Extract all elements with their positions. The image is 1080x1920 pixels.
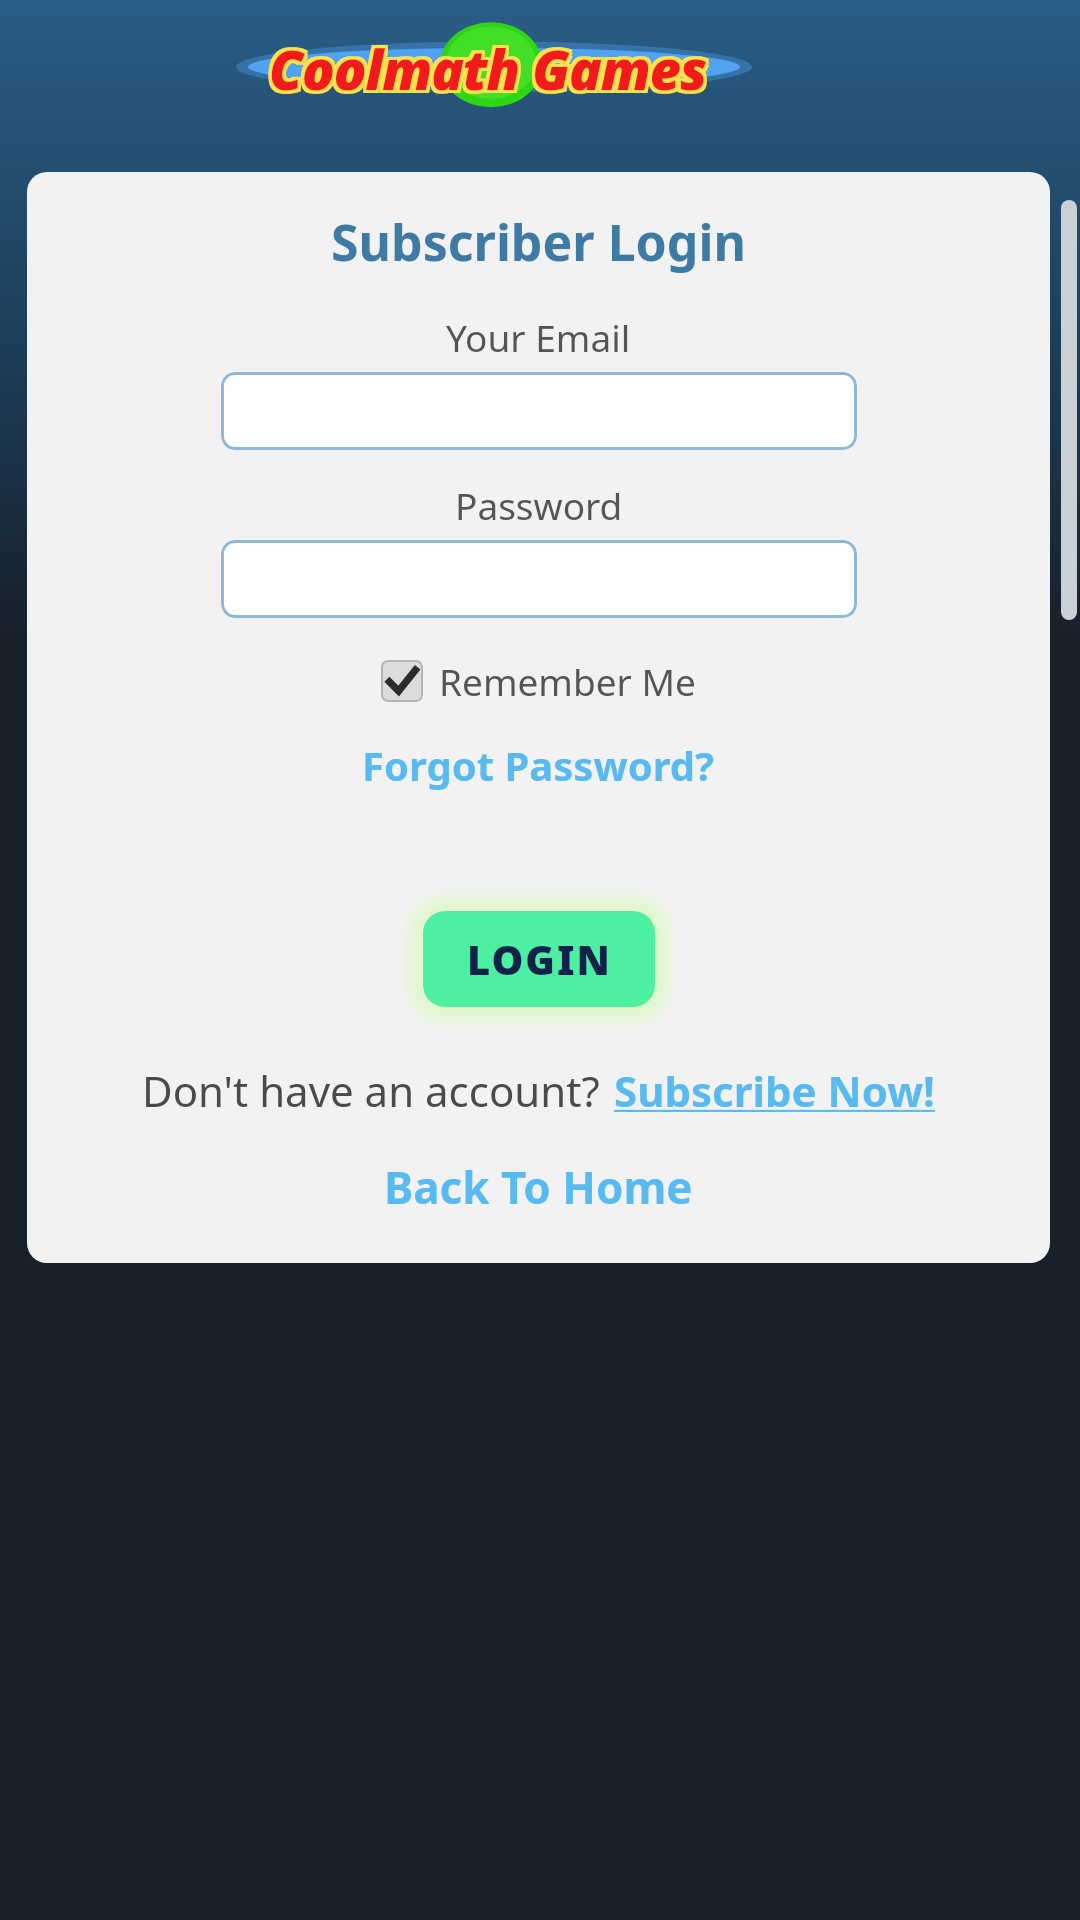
button[interactable]: Subscribe Now!	[614, 1062, 935, 1119]
staticText: Coolmath Games	[272, 32, 710, 106]
staticText: Your Email	[446, 312, 631, 362]
staticText: LOGIN	[467, 932, 612, 986]
staticText: Password	[455, 480, 623, 530]
button[interactable]: Forgot Password?	[352, 734, 725, 796]
staticText: Coolmath Games	[266, 32, 704, 106]
button[interactable]: LOGIN	[423, 911, 655, 1007]
staticText: Subscriber Login	[331, 208, 746, 276]
staticText: Don't have an account?	[142, 1062, 600, 1119]
staticText: Coolmath Games	[272, 29, 710, 103]
button[interactable]: Text input field	[221, 540, 857, 618]
button[interactable]: Coolmath Games logo	[188, 16, 788, 122]
button[interactable]: Remember Me checkbox, checked	[375, 652, 702, 710]
staticText: Forgot Password?	[362, 738, 715, 792]
staticText: Subscribe Now!	[614, 1062, 935, 1119]
staticText: Coolmath Games	[269, 29, 707, 103]
button[interactable]: Remember Me checkbox, checked	[381, 660, 423, 702]
staticText: Remember Me	[439, 656, 696, 706]
staticText: Back To Home	[384, 1157, 693, 1217]
staticText: Coolmath Games	[269, 35, 707, 109]
staticText: Coolmath Games	[272, 35, 710, 109]
button[interactable]: Back To Home	[374, 1153, 703, 1221]
staticText: Coolmath Games	[266, 29, 704, 103]
staticText: Coolmath Games	[266, 35, 704, 109]
staticText: Coolmath Games	[269, 32, 707, 106]
button[interactable]: Text input field	[221, 372, 857, 450]
